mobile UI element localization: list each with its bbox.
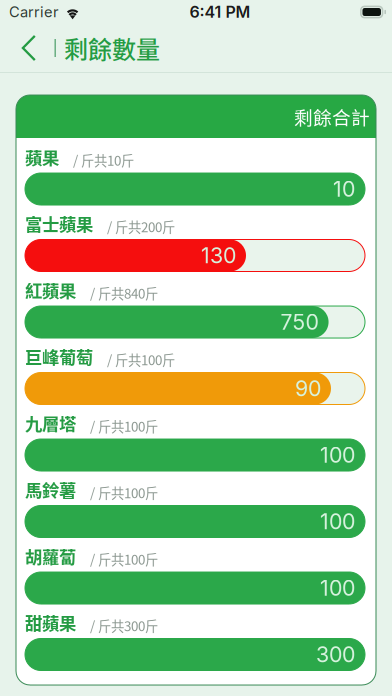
staticText: / 斤共300斤 (90, 616, 158, 635)
staticText: 300 (316, 642, 355, 667)
staticText: 甜蘋果 (25, 610, 76, 635)
staticText: 富士蘋果 (25, 211, 93, 236)
staticText: / 斤共100斤 (90, 483, 158, 502)
staticText: 蘋果 (25, 144, 59, 170)
staticText: 巨峰葡萄 (25, 344, 93, 369)
staticText: 剩餘數量 (64, 31, 160, 65)
staticText: 130 (201, 243, 236, 268)
staticText: 胡蘿蔔 (25, 543, 76, 569)
staticText: / 斤共840斤 (90, 283, 158, 302)
staticText: 馬鈴薯 (25, 477, 76, 502)
staticText: 10 (333, 176, 355, 202)
staticText: Carrier (9, 3, 59, 21)
staticText: / 斤共100斤 (90, 416, 158, 435)
staticText: 剩餘合計 (294, 103, 370, 130)
button[interactable]: Back (0, 24, 54, 72)
staticText: 90 (295, 376, 321, 401)
staticText: 100 (320, 509, 355, 534)
staticText: 九層塔 (25, 410, 76, 436)
staticText: 6:41 PM (190, 2, 251, 22)
staticText: 750 (281, 309, 319, 335)
staticText: / 斤共100斤 (90, 549, 158, 568)
staticText: 100 (320, 442, 355, 468)
staticText: / 斤共100斤 (107, 350, 175, 369)
staticText: / 斤共10斤 (73, 150, 134, 169)
staticText: / 斤共200斤 (107, 217, 175, 236)
staticText: 紅蘋果 (25, 277, 76, 303)
staticText: 100 (320, 575, 355, 601)
